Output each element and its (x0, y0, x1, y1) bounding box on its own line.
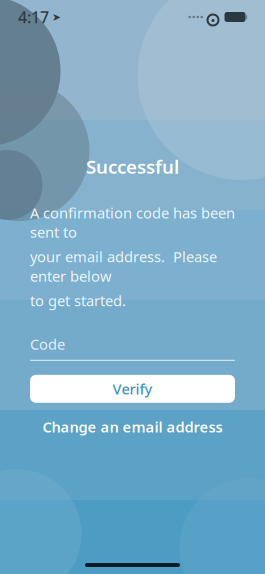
button[interactable]: Verify (30, 375, 235, 403)
staticText: Successful (86, 154, 179, 179)
staticText: A confirmation code has been sent to (30, 203, 235, 242)
staticText: Verify (112, 379, 152, 399)
staticText: 4:17 (18, 6, 49, 28)
staticText: Code (30, 334, 65, 354)
staticText: your email address. Please enter below (30, 247, 217, 286)
staticText: ➤ (52, 11, 61, 23)
staticText: Change an email address (42, 417, 222, 437)
button[interactable]: Change an email address (30, 417, 235, 437)
staticText: to get started. (30, 291, 126, 310)
